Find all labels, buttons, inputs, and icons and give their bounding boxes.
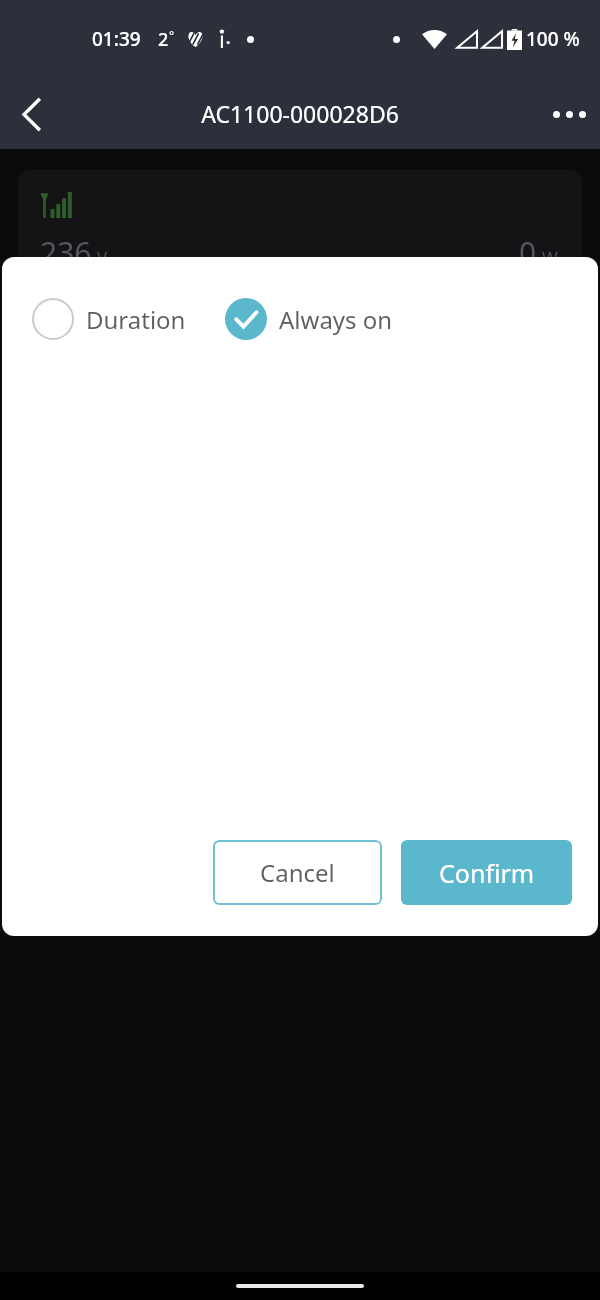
button[interactable]: Always on [223,294,395,344]
staticText: V [97,246,108,269]
button[interactable]: More options [538,83,600,145]
button[interactable]: Back [0,83,62,145]
staticText: 236 [40,232,92,273]
staticText: 2 [158,27,169,52]
button[interactable]: Cancel [213,840,382,905]
button[interactable]: Confirm [401,840,572,905]
button[interactable]: Duration [30,294,188,344]
staticText: Cancel [260,856,335,889]
staticText: 100 % [526,26,580,52]
staticText: Always on [279,303,393,336]
staticText: AC1100-000028D6 [201,98,399,129]
staticText: Confirm [439,856,535,890]
staticText: ° [169,27,175,43]
staticText: Duration [86,303,186,336]
staticText: 0 [519,232,537,273]
staticText: 01:39 [92,26,141,52]
staticText: W [542,246,558,269]
